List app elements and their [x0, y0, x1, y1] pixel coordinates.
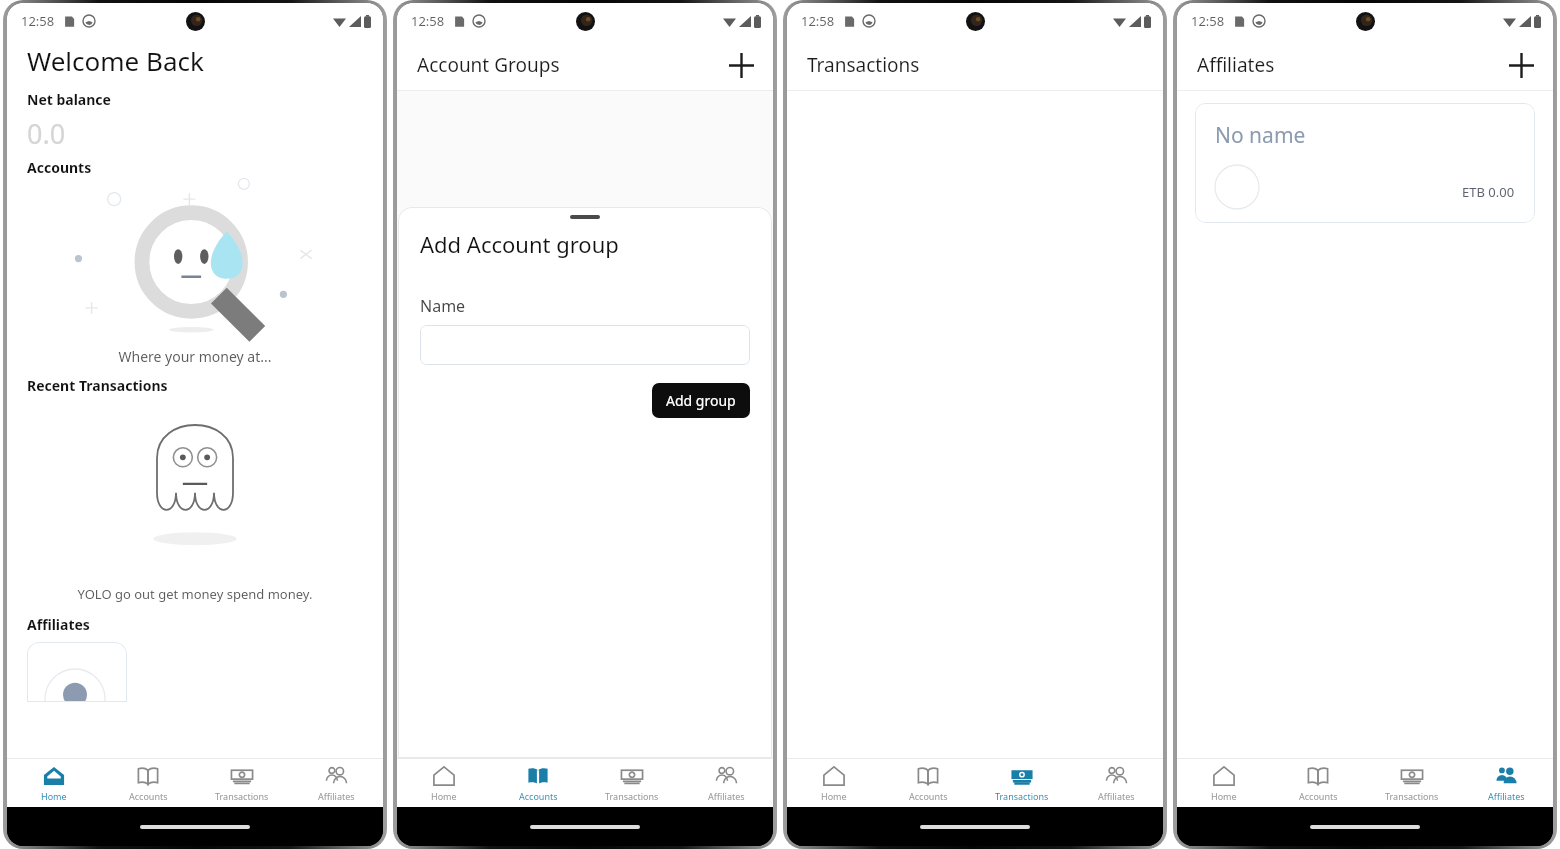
button[interactable]: Affiliates — [1069, 759, 1163, 807]
button[interactable]: Accounts — [1271, 759, 1365, 807]
staticText: Home — [431, 790, 457, 802]
staticText: 12:58 — [1191, 12, 1225, 30]
button[interactable]: Transactions — [975, 759, 1069, 807]
staticText: Affiliates — [1098, 790, 1135, 802]
staticText: Accounts — [909, 790, 948, 802]
staticText: Transactions — [807, 52, 920, 78]
staticText: Home — [1211, 790, 1237, 802]
staticText: Add group — [666, 391, 736, 410]
staticText: Affiliates — [708, 790, 745, 802]
staticText: Transactions — [215, 790, 269, 802]
staticText: No name — [1215, 121, 1306, 150]
staticText: Affiliates — [27, 615, 90, 634]
staticText: Name — [420, 295, 466, 317]
button[interactable]: Add group — [652, 383, 750, 418]
staticText: Welcome Back — [27, 43, 204, 78]
button[interactable] — [420, 325, 750, 365]
staticText: Affiliates — [1197, 52, 1275, 78]
staticText: Add Account group — [420, 229, 619, 259]
staticText: 0.0 — [27, 115, 66, 152]
button[interactable]: No name — [1195, 103, 1535, 223]
staticText: Accounts — [27, 158, 92, 177]
staticText: Where your money at... — [7, 347, 383, 366]
button[interactable]: Accounts — [881, 759, 975, 807]
button[interactable]: Accounts — [101, 759, 195, 807]
button[interactable]: Add affiliate — [1499, 43, 1543, 87]
button[interactable]: Home — [787, 759, 881, 807]
button[interactable]: Home — [7, 759, 101, 807]
staticText: 12:58 — [801, 12, 835, 30]
staticText: YOLO go out get money spend money. — [7, 585, 383, 603]
staticText: Transactions — [1385, 790, 1439, 802]
button[interactable]: Transactions — [585, 759, 679, 807]
staticText: Home — [821, 790, 847, 802]
staticText: Home — [41, 790, 67, 802]
staticText: 12:58 — [21, 12, 55, 30]
staticText: 12:58 — [411, 12, 445, 30]
button[interactable] — [27, 642, 127, 702]
staticText: Affiliates — [318, 790, 355, 802]
staticText: Account Groups — [417, 52, 560, 78]
button[interactable]: Affiliates — [289, 759, 383, 807]
staticText: Transactions — [995, 790, 1049, 802]
button[interactable]: Transactions — [1365, 759, 1459, 807]
staticText: Recent Transactions — [27, 376, 168, 395]
button[interactable]: Transactions — [195, 759, 289, 807]
button[interactable]: Affiliates — [1459, 759, 1553, 807]
staticText: Accounts — [129, 790, 168, 802]
staticText: Transactions — [605, 790, 659, 802]
staticText: Affiliates — [1488, 790, 1525, 802]
staticText: Accounts — [519, 790, 558, 802]
button[interactable]: Home — [397, 759, 491, 807]
button[interactable]: Accounts — [491, 759, 585, 807]
staticText: ETB 0.00 — [1462, 183, 1515, 201]
staticText: Accounts — [1299, 790, 1338, 802]
button[interactable]: Add account group — [719, 43, 763, 87]
button[interactable]: Affiliates — [679, 759, 773, 807]
button[interactable]: Home — [1177, 759, 1271, 807]
staticText: Net balance — [27, 90, 111, 109]
